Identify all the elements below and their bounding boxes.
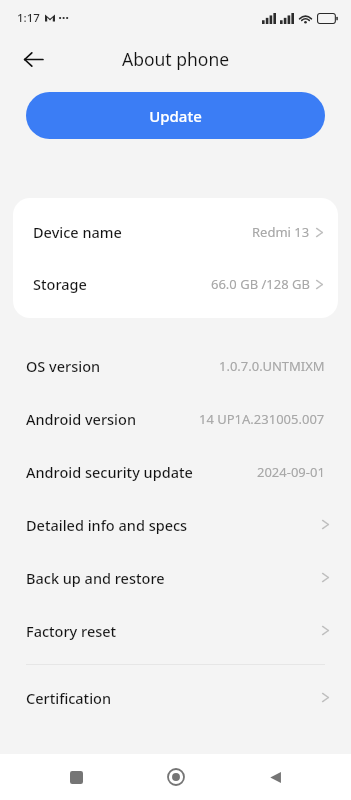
button[interactable]: Recent apps (52, 754, 100, 800)
staticText: Certification (26, 688, 112, 708)
staticText: Detailed info and specs (26, 515, 188, 535)
button[interactable]: Back (251, 754, 299, 800)
button[interactable]: Certification (0, 671, 351, 724)
button[interactable]: Android security update (0, 445, 351, 498)
button[interactable]: Android version (0, 392, 351, 445)
staticText: Storage (33, 274, 87, 294)
button[interactable]: Factory reset (0, 604, 351, 657)
button[interactable]: Back up and restore (0, 551, 351, 604)
button[interactable]: Update (26, 92, 325, 139)
staticText: Back up and restore (26, 568, 165, 588)
button[interactable]: Back (14, 40, 52, 78)
button[interactable]: Device name (13, 206, 338, 258)
button[interactable]: Detailed info and specs (0, 498, 351, 551)
staticText: 66.0 GB /128 GB (211, 275, 310, 293)
staticText: 1.0.7.0.UNTMIXM (219, 357, 325, 375)
staticText: OS version (26, 356, 101, 376)
staticText: 1:17 (17, 10, 40, 26)
staticText: 14 UP1A.231005.007 (199, 410, 325, 428)
staticText: 2024-09-01 (257, 463, 325, 481)
staticText: Redmi 13 (252, 223, 310, 241)
staticText: Device name (33, 222, 122, 242)
button[interactable]: OS version (0, 339, 351, 392)
staticText: Android security update (26, 462, 193, 482)
button[interactable]: Home (152, 754, 200, 800)
staticText: About phone (122, 47, 230, 71)
staticText: Factory reset (26, 621, 117, 641)
staticText: Android version (26, 409, 136, 429)
button[interactable]: Storage (13, 258, 338, 310)
staticText: Update (149, 106, 202, 126)
